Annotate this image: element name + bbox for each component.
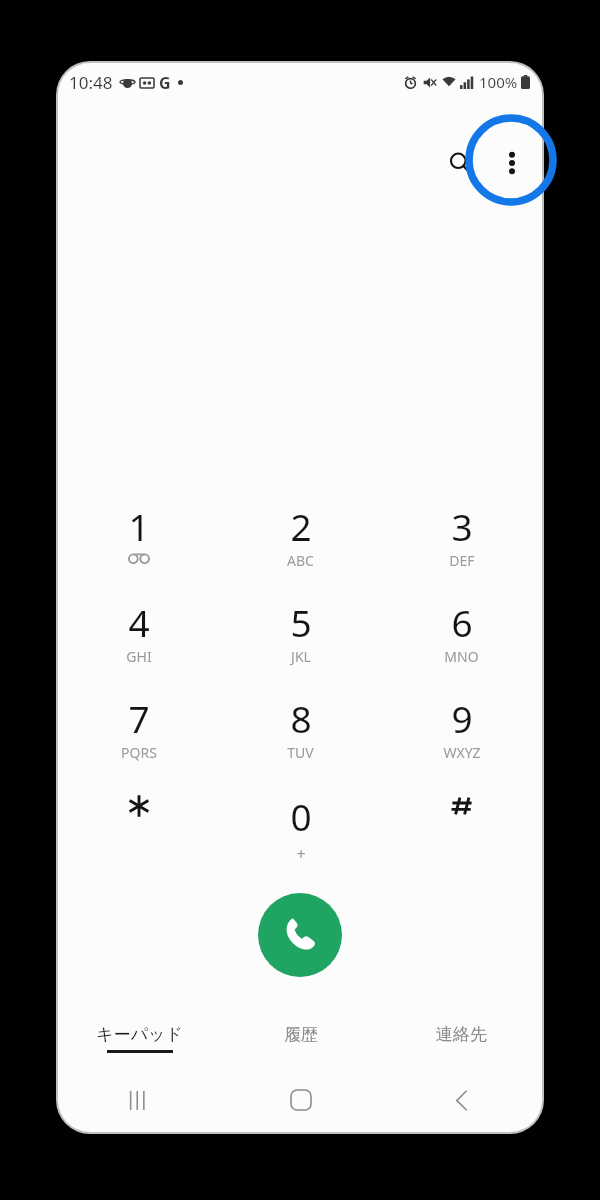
button[interactable]: 連絡先 bbox=[381, 1018, 542, 1070]
button[interactable]: 1 bbox=[58, 495, 220, 591]
staticText: 8 bbox=[290, 693, 312, 743]
button[interactable]: 7 bbox=[58, 687, 220, 783]
staticText: G bbox=[159, 72, 171, 94]
staticText: GHI bbox=[126, 647, 152, 666]
staticText: PQRS bbox=[121, 743, 157, 762]
staticText: 履歴 bbox=[284, 1024, 318, 1045]
staticText: 2 bbox=[290, 501, 312, 551]
staticText: DEF bbox=[449, 551, 475, 570]
button[interactable]: 8 bbox=[220, 687, 381, 783]
button[interactable]: 9 bbox=[381, 687, 542, 783]
staticText: 1 bbox=[128, 501, 150, 551]
button[interactable]: 2 bbox=[220, 495, 381, 591]
staticText: ABC bbox=[287, 551, 314, 570]
staticText: TUV bbox=[287, 743, 314, 762]
staticText: 6 bbox=[451, 597, 473, 647]
button[interactable]: 履歴 bbox=[220, 1018, 381, 1070]
button[interactable]: 3 bbox=[381, 495, 542, 591]
button[interactable]: 4 bbox=[58, 591, 220, 687]
button[interactable]: 0 bbox=[220, 783, 381, 879]
button[interactable]: Call bbox=[258, 893, 342, 977]
staticText: JKL bbox=[291, 647, 311, 666]
staticText: 100% bbox=[479, 72, 518, 92]
button[interactable]: キーパッド bbox=[58, 1018, 220, 1070]
button[interactable]: Home bbox=[220, 1071, 381, 1129]
button[interactable]: 5 bbox=[220, 591, 381, 687]
button[interactable]: More options bbox=[486, 137, 538, 189]
staticText: キーパッド bbox=[96, 1024, 183, 1045]
staticText: + bbox=[296, 843, 306, 865]
staticText: 7 bbox=[128, 693, 150, 743]
staticText: 9 bbox=[451, 693, 473, 743]
button[interactable] bbox=[381, 783, 542, 879]
staticText: 連絡先 bbox=[436, 1024, 487, 1045]
staticText: WXYZ bbox=[443, 743, 481, 762]
staticText: 3 bbox=[451, 501, 473, 551]
button[interactable]: Recents bbox=[58, 1071, 220, 1129]
staticText: 10:48 bbox=[69, 71, 113, 94]
button[interactable]: 6 bbox=[381, 591, 542, 687]
staticText: 0 bbox=[290, 791, 312, 841]
button[interactable] bbox=[58, 783, 220, 879]
staticText: 4 bbox=[128, 597, 150, 647]
button[interactable]: Back bbox=[381, 1071, 542, 1129]
button[interactable]: Search bbox=[434, 137, 486, 189]
staticText: MNO bbox=[444, 647, 479, 666]
staticText: 5 bbox=[290, 597, 312, 647]
